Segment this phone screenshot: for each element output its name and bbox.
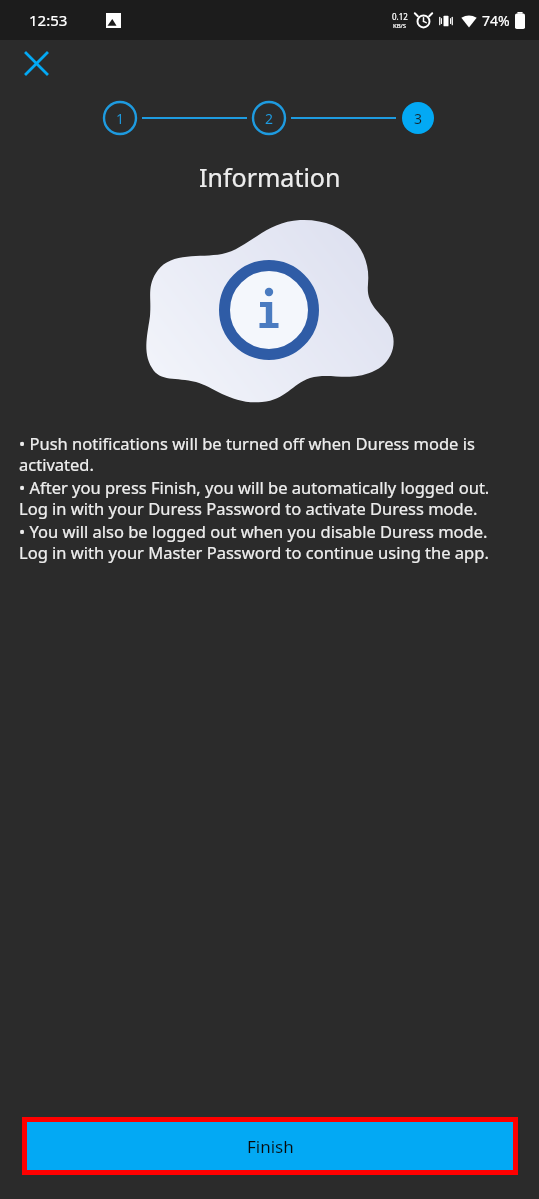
staticText: • Push notifications will be turned off … (19, 432, 520, 476)
staticText: Finish (247, 1135, 294, 1158)
staticText: KB/S (393, 22, 407, 30)
staticText: 12:53 (29, 10, 68, 30)
button[interactable]: Finish (27, 1122, 513, 1170)
staticText: 2 (265, 109, 274, 128)
staticText: 3 (414, 109, 423, 128)
staticText: 0.12 (392, 11, 408, 22)
staticText: • You will also be logged out when you d… (19, 520, 520, 564)
staticText: • After you press Finish, you will be au… (19, 476, 520, 520)
staticText: 74% (482, 11, 510, 30)
button[interactable]: Close (14, 41, 58, 85)
staticText: 1 (116, 109, 125, 128)
staticText: Information (199, 160, 341, 194)
